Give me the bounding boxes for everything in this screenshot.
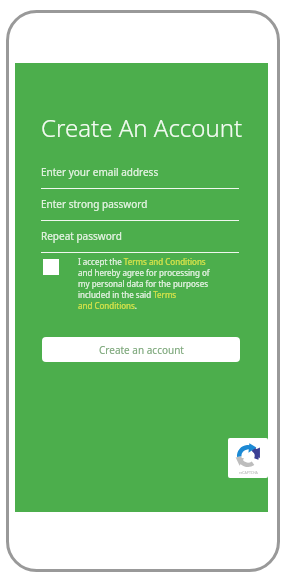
button[interactable]: Enter strong password bbox=[41, 195, 239, 221]
staticText: Enter strong password bbox=[41, 197, 148, 211]
staticText: Repeat password bbox=[41, 229, 122, 243]
staticText: I accept the Terms and Conditions and he… bbox=[78, 256, 210, 311]
button[interactable]: Repeat password bbox=[41, 227, 239, 253]
button[interactable]: Enter your email address bbox=[41, 163, 239, 189]
button[interactable]: reCAPTCHA bbox=[228, 438, 268, 478]
staticText: Create An Account bbox=[41, 111, 243, 144]
staticText: Create an account bbox=[99, 343, 184, 357]
staticText: reCAPTCHA bbox=[239, 470, 258, 475]
staticText: Enter your email address bbox=[41, 165, 159, 179]
button[interactable]: Create an account bbox=[42, 337, 240, 362]
button[interactable]: I accept the Terms and Conditions and he… bbox=[78, 256, 248, 311]
